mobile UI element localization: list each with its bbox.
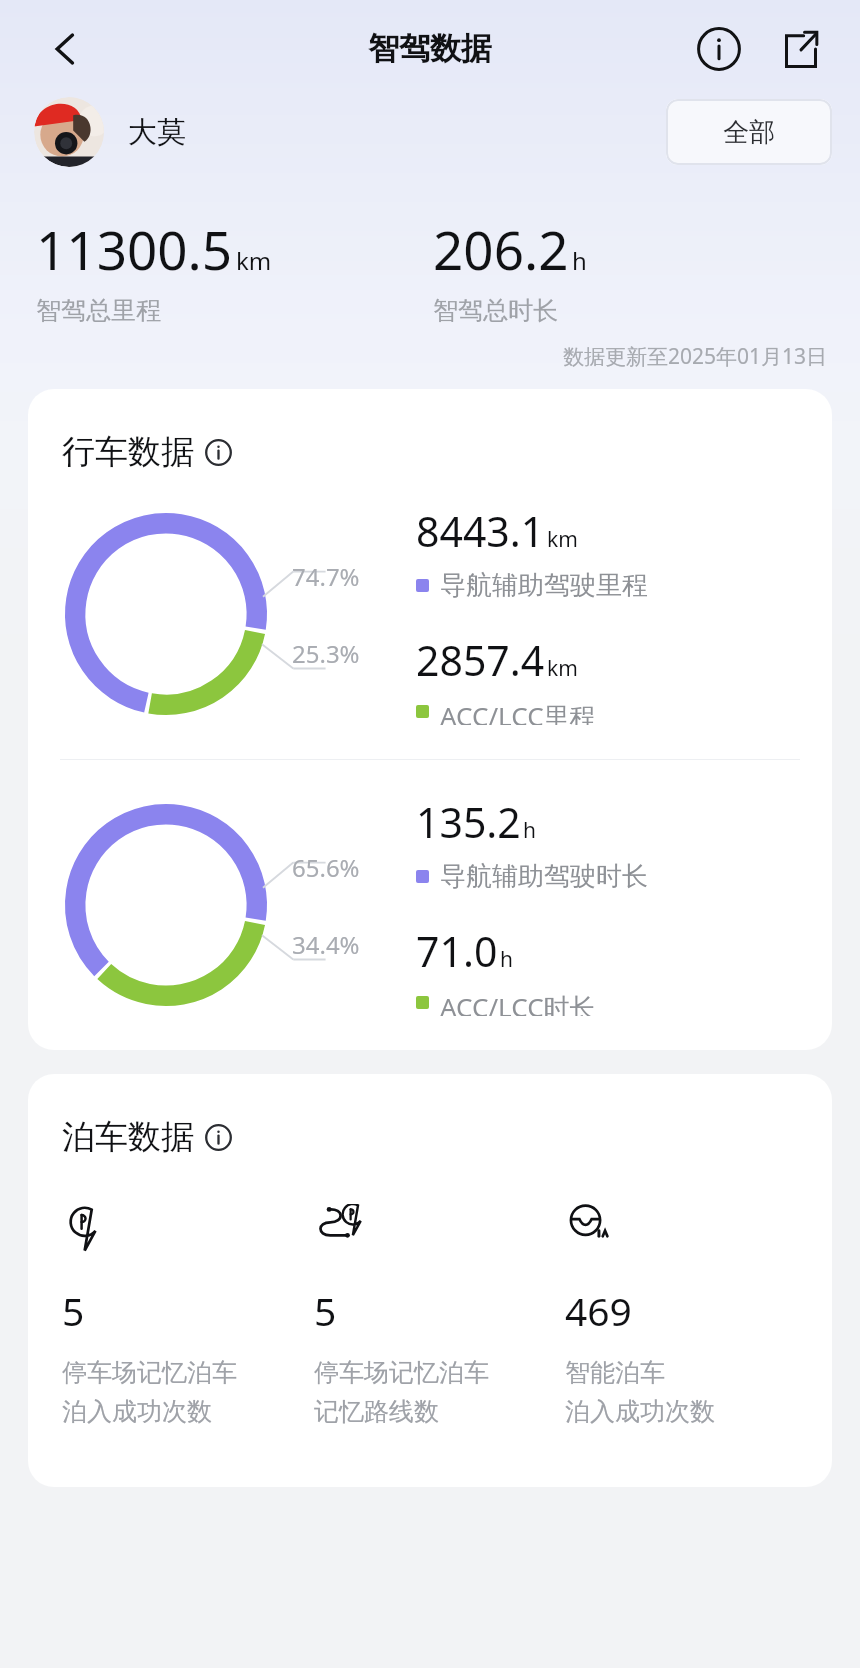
staticText: 65.6% [292, 851, 360, 884]
staticText: 135.2 [416, 794, 521, 850]
button[interactable]: 泊车数据 [62, 1116, 232, 1158]
staticText: 8443.1 [416, 503, 545, 559]
staticText: 全部 [723, 116, 775, 149]
staticText: 泊入成功次数 [565, 1396, 715, 1427]
staticText: h [572, 244, 587, 277]
staticText: 数据更新至2025年01月13日 [563, 342, 828, 371]
button[interactable]: 全部 [666, 99, 832, 165]
staticText: 智能泊车 [565, 1357, 665, 1388]
staticText: km [547, 525, 578, 554]
staticText: 5 [62, 1284, 85, 1337]
staticText: km [547, 654, 578, 683]
staticText: 导航辅助驾驶时长 [440, 860, 648, 893]
staticText: 5 [314, 1284, 337, 1337]
staticText: 智驾数据 [368, 29, 492, 68]
button[interactable]: Information [688, 18, 750, 80]
staticText: ACC/LCC里程 [440, 698, 596, 725]
button[interactable]: 大莫 [34, 97, 186, 167]
button[interactable]: 行车数据 [62, 431, 232, 473]
staticText: 智驾总里程 [36, 295, 161, 326]
staticText: 停车场记忆泊车 [314, 1357, 489, 1388]
staticText: 71.0 [416, 923, 498, 979]
staticText: 25.3% [292, 637, 360, 670]
button[interactable]: 泊车数据 [28, 1074, 832, 1487]
staticText: 2857.4 [416, 632, 545, 688]
staticText: 11300.5 [36, 213, 233, 285]
staticText: 74.7% [292, 560, 360, 593]
staticText: 智驾总时长 [433, 295, 558, 326]
staticText: km [236, 244, 272, 277]
staticText: 停车场记忆泊车 [62, 1357, 237, 1388]
staticText: 34.4% [292, 928, 360, 961]
button[interactable]: 5 [314, 1204, 565, 1427]
button[interactable]: Share [770, 18, 832, 80]
button[interactable]: 行车数据 [28, 389, 832, 1050]
staticText: 大莫 [128, 114, 186, 151]
staticText: 行车数据 [62, 431, 194, 473]
staticText: 导航辅助驾驶里程 [440, 569, 648, 602]
staticText: 泊入成功次数 [62, 1396, 212, 1427]
staticText: h [500, 945, 513, 974]
staticText: ACC/LCC时长 [440, 989, 596, 1016]
staticText: 记忆路线数 [314, 1396, 439, 1427]
staticText: 469 [565, 1284, 632, 1337]
button[interactable]: 469 [565, 1204, 816, 1427]
staticText: h [523, 816, 536, 845]
staticText: 泊车数据 [62, 1116, 194, 1158]
button[interactable]: 5 [62, 1204, 314, 1427]
button[interactable]: Back [36, 20, 94, 78]
staticText: 206.2 [433, 213, 569, 285]
